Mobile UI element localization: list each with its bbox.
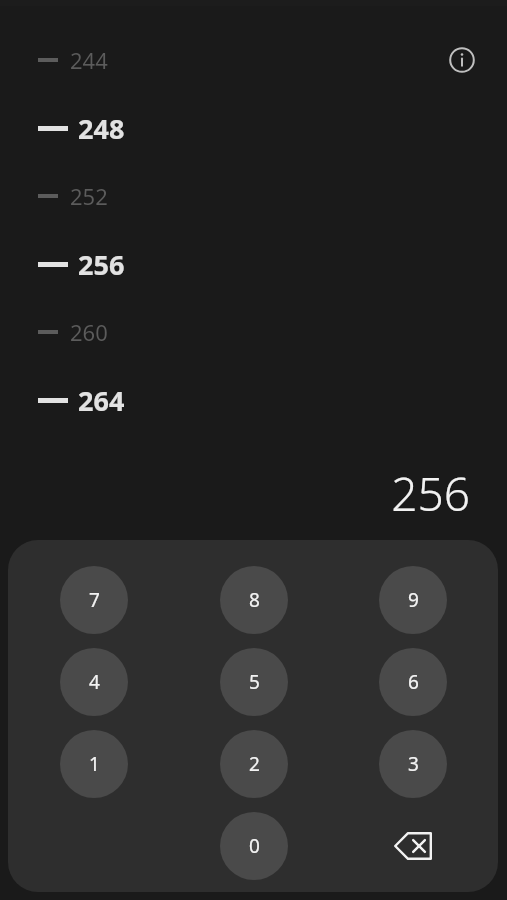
button[interactable]: 256: [0, 242, 200, 286]
staticText: 260: [70, 317, 108, 347]
button[interactable]: Info: [438, 36, 486, 84]
button[interactable]: 1: [60, 730, 128, 798]
staticText: 244: [70, 45, 108, 75]
button[interactable]: 244: [0, 38, 200, 82]
staticText: 264: [78, 382, 125, 419]
button[interactable]: Backspace: [379, 812, 447, 880]
button[interactable]: 3: [379, 730, 447, 798]
staticText: 8: [249, 587, 260, 613]
button[interactable]: 9: [379, 566, 447, 634]
staticText: 5: [249, 669, 260, 695]
button[interactable]: 264: [0, 378, 200, 422]
staticText: 9: [408, 587, 419, 613]
staticText: 6: [408, 669, 419, 695]
staticText: 7: [89, 587, 100, 613]
button[interactable]: 2: [220, 730, 288, 798]
staticText: 0: [249, 833, 260, 859]
staticText: 256: [78, 246, 125, 283]
button[interactable]: 5: [220, 648, 288, 716]
button[interactable]: 248: [0, 106, 200, 150]
button[interactable]: 252: [0, 174, 200, 218]
button[interactable]: 0: [220, 812, 288, 880]
staticText: 252: [70, 181, 108, 211]
staticText: 1: [89, 751, 100, 777]
staticText: 2: [249, 751, 260, 777]
button[interactable]: 6: [379, 648, 447, 716]
staticText: 3: [408, 751, 419, 777]
staticText: 4: [89, 669, 100, 695]
button[interactable]: 8: [220, 566, 288, 634]
staticText: 248: [78, 110, 125, 147]
button[interactable]: 260: [0, 310, 200, 354]
button[interactable]: 7: [60, 566, 128, 634]
staticText: 256: [391, 462, 470, 518]
button[interactable]: 4: [60, 648, 128, 716]
